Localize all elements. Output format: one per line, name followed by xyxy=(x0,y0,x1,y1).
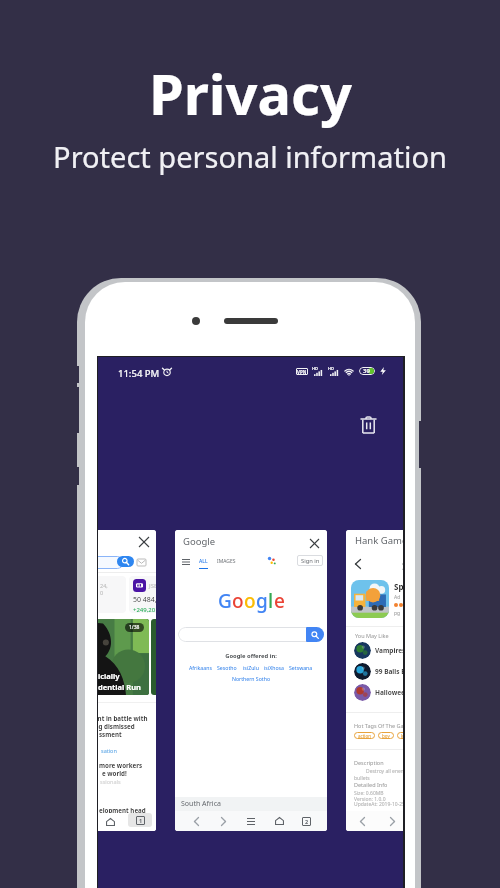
button[interactable]: 24, xyxy=(98,576,126,613)
staticText: kids xyxy=(401,733,403,739)
staticText: 11:54 PM xyxy=(118,367,160,380)
button[interactable]: isiZulu xyxy=(243,664,259,671)
button[interactable]: Close tab xyxy=(98,530,156,831)
staticText: 0 xyxy=(100,589,104,596)
staticText: pg xyxy=(394,610,401,617)
staticText: Version: 1.0.0 xyxy=(354,796,386,803)
button[interactable]: Home xyxy=(272,814,286,828)
button[interactable]: Back xyxy=(189,814,203,828)
staticText: dant in battle with xyxy=(98,714,148,722)
button[interactable]: Setswana xyxy=(289,664,313,671)
staticText: Google offered in: xyxy=(175,652,327,660)
button[interactable]: Tabs xyxy=(128,813,152,827)
button[interactable]: Halloween xyxy=(354,683,403,701)
staticText: action xyxy=(358,733,371,739)
staticText: +249,20 ( xyxy=(133,606,156,613)
button[interactable]: Close tab xyxy=(307,536,321,550)
button[interactable]: 99 Balls Ev xyxy=(354,662,403,680)
button[interactable]: Menu xyxy=(244,814,258,828)
staticText: HD xyxy=(328,366,334,371)
staticText: Halloween xyxy=(375,688,403,697)
button[interactable]: Google xyxy=(175,530,327,831)
staticText: JSE xyxy=(149,582,156,590)
staticText: Privacy xyxy=(149,55,352,131)
staticText: icially xyxy=(98,671,120,681)
staticText: 99 Balls Ev xyxy=(375,667,403,676)
staticText: sation xyxy=(101,747,117,754)
staticText: eing dismissed xyxy=(98,722,135,730)
staticText: 1/38 xyxy=(129,624,140,631)
staticText: Google xyxy=(183,535,216,548)
staticText: 1 xyxy=(139,817,143,824)
button[interactable]: Forward xyxy=(385,814,399,828)
staticText: e xyxy=(274,588,285,614)
staticText: o xyxy=(232,588,244,614)
button[interactable]: Home xyxy=(103,815,117,829)
staticText: Ad xyxy=(394,594,401,601)
staticText: South Africa xyxy=(181,799,221,809)
staticText: HD xyxy=(312,366,318,371)
staticText: You May Like xyxy=(355,632,389,639)
button[interactable]: IMAGES xyxy=(217,558,236,565)
button[interactable]: Sign in xyxy=(297,555,323,566)
button[interactable]: Hank Game xyxy=(346,530,403,831)
staticText: 24, xyxy=(100,582,108,589)
button[interactable]: isiXhosa xyxy=(264,664,284,671)
staticText: 39 xyxy=(363,367,370,375)
staticText: dential Run xyxy=(98,682,141,692)
button[interactable]: Vampires a xyxy=(354,641,403,659)
staticText: Hot Tags Of The Game xyxy=(354,722,403,729)
staticText: 50 484,8 xyxy=(133,595,156,605)
button[interactable]: Search xyxy=(117,556,134,567)
staticText: more workers xyxy=(99,761,143,769)
staticText: ssionals xyxy=(100,778,121,785)
staticText: Sp xyxy=(394,581,403,592)
button[interactable]: Northern Sotho xyxy=(175,675,327,682)
button[interactable] xyxy=(178,627,324,642)
button[interactable]: Back xyxy=(355,814,369,828)
button[interactable]: Back xyxy=(351,557,365,571)
staticText: Sp xyxy=(402,559,403,573)
staticText: bullets xyxy=(354,775,370,782)
staticText: e world! xyxy=(102,769,127,777)
staticText: Vampires a xyxy=(375,646,403,655)
button[interactable]: Sesotho xyxy=(217,664,237,671)
staticText: VPN xyxy=(297,369,307,375)
staticText: ssment xyxy=(99,730,122,738)
staticText: Description xyxy=(354,759,384,766)
button[interactable]: Forward xyxy=(216,814,230,828)
button[interactable]: Search xyxy=(306,627,324,642)
staticText: Size: 0.60MB xyxy=(354,790,384,797)
staticText: o xyxy=(244,588,256,614)
button[interactable]: Mail xyxy=(137,559,146,566)
staticText: l xyxy=(268,588,274,614)
staticText: Hank Game xyxy=(355,534,403,547)
button[interactable]: Tabs xyxy=(299,814,313,828)
button[interactable]: Delete all xyxy=(352,408,384,440)
button[interactable]: boy xyxy=(382,732,390,739)
button[interactable]: Close tab xyxy=(137,535,151,549)
staticText: Detailed Info xyxy=(354,781,388,788)
staticText: Protect personal information xyxy=(53,137,447,176)
staticText: ALL xyxy=(199,558,208,565)
staticText: elopment head xyxy=(99,806,146,814)
staticText: boy xyxy=(382,733,390,739)
staticText: Sign in xyxy=(301,557,320,565)
staticText: 2 xyxy=(305,818,309,825)
button[interactable]: kids xyxy=(401,732,403,739)
staticText: g xyxy=(256,588,268,614)
staticText: G xyxy=(218,588,232,614)
staticText: UpdateAt: 2019-10-25 xyxy=(354,801,403,808)
button[interactable]: ALL xyxy=(199,558,208,569)
button[interactable]: JSE xyxy=(129,576,156,613)
staticText: Destroy all enemies xyxy=(366,768,403,775)
button[interactable]: Menu xyxy=(182,559,190,565)
button[interactable]: action xyxy=(358,732,371,739)
button[interactable]: Afrikaans xyxy=(189,664,212,671)
